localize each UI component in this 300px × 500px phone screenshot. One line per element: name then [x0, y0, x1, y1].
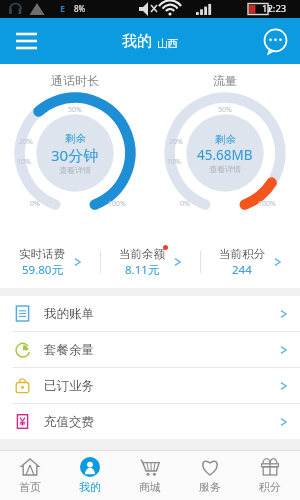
staticText: 10%	[17, 157, 31, 167]
button[interactable]: 实时话费	[0, 236, 100, 288]
staticText: 20%	[169, 137, 183, 147]
button[interactable]: Menu	[8, 23, 44, 59]
staticText: 我的	[79, 480, 101, 494]
staticText: 套餐余量	[44, 342, 94, 358]
staticText: 通话时长	[51, 73, 99, 88]
staticText: 100%	[258, 199, 276, 209]
button[interactable]: 我的账单	[0, 296, 300, 331]
staticText: 积分	[259, 480, 281, 494]
staticText: 我的账单	[44, 306, 94, 322]
staticText: 30分钟	[51, 145, 99, 165]
staticText: 我的	[122, 32, 152, 51]
button[interactable]: 商城	[120, 451, 180, 500]
button[interactable]: 当前余额	[101, 236, 200, 288]
staticText: 山西	[157, 37, 178, 50]
staticText: 8.11元	[125, 262, 160, 278]
staticText: 8%	[74, 3, 86, 14]
staticText: 充值交费	[44, 414, 94, 430]
staticText: E	[60, 2, 66, 14]
button[interactable]: 当前积分	[201, 236, 300, 288]
staticText: 剩余	[215, 133, 236, 146]
staticText: 50%	[218, 105, 232, 115]
staticText: 服务	[199, 480, 221, 494]
staticText: 查看详情	[59, 165, 91, 175]
staticText: 59.80元	[22, 262, 63, 278]
staticText: 10%	[167, 157, 181, 167]
staticText: 商城	[139, 480, 161, 494]
staticText: 12:23	[262, 2, 287, 15]
staticText: 0%	[30, 199, 40, 209]
button[interactable]: 已订业务	[0, 368, 300, 403]
button[interactable]: 积分	[240, 451, 300, 500]
staticText: 100%	[108, 199, 126, 209]
button[interactable]: 流量	[150, 64, 300, 236]
staticText: 实时话费	[19, 247, 65, 261]
button[interactable]: 通话时长	[0, 64, 150, 236]
staticText: 流量	[213, 73, 237, 88]
staticText: 244	[232, 262, 252, 278]
button[interactable]: 套餐余量	[0, 332, 300, 367]
staticText: 已订业务	[44, 378, 94, 394]
staticText: 45.68MB	[197, 146, 253, 164]
button[interactable]: 首页	[0, 451, 60, 500]
staticText: 0%	[180, 199, 190, 209]
button[interactable]: 服务	[180, 451, 240, 500]
button[interactable]: 我的	[60, 451, 120, 500]
button[interactable]: Messages	[258, 24, 292, 58]
staticText: 当前积分	[219, 247, 265, 261]
staticText: 当前余额	[119, 247, 165, 261]
staticText: 剩余	[65, 132, 86, 145]
staticText: 查看详情	[209, 164, 241, 174]
staticText: 首页	[19, 480, 41, 494]
staticText: 20%	[19, 137, 33, 147]
button[interactable]: 充值交费	[0, 404, 300, 439]
staticText: 50%	[68, 105, 82, 115]
